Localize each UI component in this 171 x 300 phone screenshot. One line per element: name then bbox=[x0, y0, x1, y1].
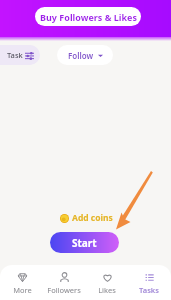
button[interactable]: Likes bbox=[87, 268, 127, 295]
button[interactable]: Tasks bbox=[129, 268, 169, 295]
button[interactable]: Task bbox=[0, 45, 40, 65]
button[interactable]: Add coins bbox=[60, 212, 113, 224]
other: Followers bbox=[59, 272, 70, 283]
staticText: Add coins bbox=[72, 212, 113, 224]
staticText: Task bbox=[7, 50, 23, 60]
button[interactable]: More bbox=[2, 268, 42, 295]
staticText: Followers bbox=[47, 285, 81, 295]
staticText: Follow bbox=[68, 50, 94, 61]
button[interactable]: Start bbox=[50, 232, 119, 253]
staticText: Buy Followers & Likes bbox=[40, 11, 137, 23]
button[interactable]: Buy Followers & Likes bbox=[35, 7, 141, 26]
button[interactable]: Followers bbox=[44, 268, 84, 295]
staticText: More bbox=[13, 285, 32, 295]
staticText: Likes bbox=[98, 285, 116, 295]
other: Tasks bbox=[144, 272, 155, 283]
staticText: Tasks bbox=[139, 285, 159, 295]
button[interactable]: Follow bbox=[57, 45, 113, 65]
staticText: Start bbox=[72, 236, 97, 250]
other: Likes bbox=[102, 272, 113, 283]
other: More bbox=[17, 272, 28, 283]
